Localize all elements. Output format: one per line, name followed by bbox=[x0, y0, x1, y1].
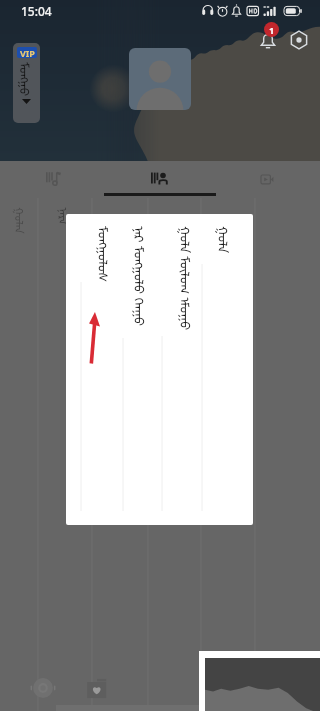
staticText: ᠭᠤᠯᠡ bbox=[214, 226, 237, 253]
button[interactable]: Favourites bbox=[85, 676, 109, 700]
staticText: ᠮᠣᠩᠭᠣ bbox=[16, 62, 37, 97]
button[interactable] bbox=[129, 48, 191, 110]
button[interactable] bbox=[205, 658, 320, 711]
other: Expand bbox=[22, 98, 31, 105]
staticText: 15:04 bbox=[21, 3, 52, 19]
button[interactable]: ᠮᠣᠩᠭᠣᠯᠤᠰ bbox=[66, 214, 253, 525]
staticText: ᠭᠤᠯᠡ ᠮᠦᠯᠤᠭ ᠡᠮᠤᠭᠤ bbox=[176, 226, 199, 331]
staticText: 1 bbox=[269, 24, 275, 36]
staticText: ᠭᠤᠯᠡᠨ bbox=[11, 207, 30, 233]
staticText: VIP bbox=[20, 47, 35, 58]
button[interactable]: Artists bbox=[120, 161, 200, 198]
button[interactable]: Notifications bbox=[256, 29, 280, 53]
button[interactable]: VIP bbox=[13, 43, 40, 123]
staticText: ᠨᠡᠷᠡ bbox=[55, 207, 74, 225]
staticText: ᠮᠣᠩᠭᠣᠯᠤᠰ bbox=[94, 226, 117, 283]
button[interactable]: Settings bbox=[288, 29, 310, 51]
staticText: ᠨᠡᠷ ᠮᠣᠩᠭᠣᠯᠤ ᠬᠡᠨᠭᠤ bbox=[130, 226, 153, 327]
button[interactable]: Music bbox=[29, 674, 57, 702]
